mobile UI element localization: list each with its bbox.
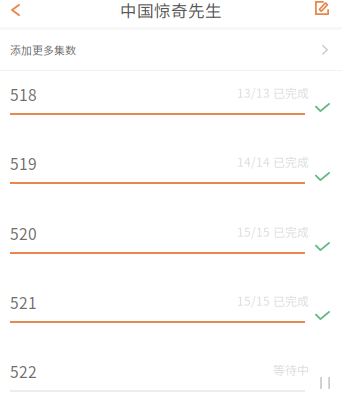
staticText: 15/15 已完成 bbox=[237, 223, 309, 240]
button[interactable]: 添加更多集数 bbox=[0, 30, 342, 70]
button[interactable]: Back bbox=[0, 0, 34, 27]
button[interactable]: 522 bbox=[0, 348, 342, 393]
staticText: 等待中 bbox=[273, 361, 309, 378]
button[interactable]: 520 bbox=[0, 210, 342, 279]
staticText: 14/14 已完成 bbox=[237, 153, 309, 170]
button[interactable]: 521 bbox=[0, 279, 342, 348]
staticText: 518 bbox=[10, 83, 37, 106]
staticText: 519 bbox=[10, 152, 37, 175]
button[interactable]: 518 bbox=[0, 71, 342, 140]
staticText: 中国惊奇先生 bbox=[120, 0, 222, 22]
staticText: 520 bbox=[10, 222, 37, 245]
button[interactable]: 519 bbox=[0, 140, 342, 210]
staticText: 521 bbox=[10, 291, 37, 314]
staticText: 13/13 已完成 bbox=[237, 84, 309, 101]
button[interactable]: Edit bbox=[301, 0, 342, 27]
staticText: 15/15 已完成 bbox=[237, 292, 309, 309]
staticText: 522 bbox=[10, 360, 37, 383]
staticText: 添加更多集数 bbox=[10, 42, 76, 58]
